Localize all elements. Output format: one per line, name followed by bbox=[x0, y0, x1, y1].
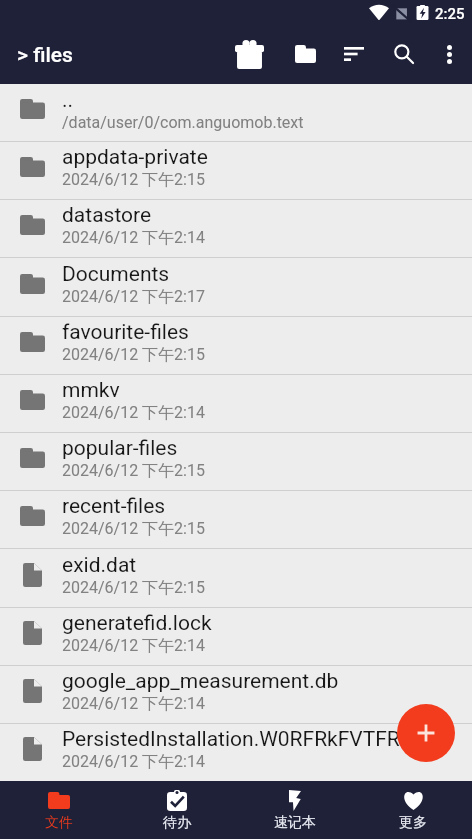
button[interactable]: Search bbox=[383, 28, 425, 84]
button[interactable]: 文件 bbox=[0, 781, 118, 839]
button[interactable]: google_app_measurement.db bbox=[0, 666, 472, 723]
button[interactable]: More options bbox=[428, 28, 470, 84]
staticText: Documents bbox=[62, 262, 170, 287]
staticText: 2:25 bbox=[435, 5, 465, 23]
button[interactable]: 待办 bbox=[118, 781, 236, 839]
staticText: recent-files bbox=[62, 494, 166, 519]
button[interactable]: recent-files bbox=[0, 491, 472, 548]
staticText: 2024/6/12 下午2:14 bbox=[62, 403, 205, 423]
staticText: 2024/6/12 下午2:15 bbox=[62, 578, 205, 598]
staticText: 待办 bbox=[163, 814, 191, 832]
staticText: 2024/6/12 下午2:14 bbox=[62, 636, 205, 656]
staticText: 2024/6/12 下午2:14 bbox=[62, 752, 205, 772]
button[interactable]: Folder bbox=[284, 28, 326, 84]
button[interactable]: datastore bbox=[0, 200, 472, 257]
staticText: > files bbox=[17, 43, 73, 68]
staticText: 2024/6/12 下午2:15 bbox=[62, 345, 205, 365]
staticText: mmkv bbox=[62, 378, 120, 403]
staticText: 2024/6/12 下午2:15 bbox=[62, 461, 205, 481]
button[interactable]: mmkv bbox=[0, 375, 472, 432]
staticText: 2024/6/12 下午2:14 bbox=[62, 228, 205, 248]
button[interactable]: 更多 bbox=[354, 781, 472, 839]
button[interactable]: exid.dat bbox=[0, 550, 472, 607]
button[interactable]: Documents bbox=[0, 259, 472, 316]
button[interactable]: popular-files bbox=[0, 433, 472, 490]
staticText: 速记本 bbox=[274, 814, 316, 832]
staticText: /data/user/0/com.anguomob.text bbox=[62, 113, 304, 132]
staticText: exid.dat bbox=[62, 553, 137, 578]
button[interactable]: appdata-private bbox=[0, 142, 472, 199]
button[interactable]: favourite-files bbox=[0, 317, 472, 374]
staticText: popular-files bbox=[62, 436, 178, 461]
staticText: PersistedInstallation.W0RFRkFVTFRd bbox=[62, 727, 412, 752]
staticText: google_app_measurement.db bbox=[62, 669, 339, 694]
staticText: 文件 bbox=[45, 814, 73, 832]
button[interactable]: generatefid.lock bbox=[0, 608, 472, 665]
staticText: .. bbox=[62, 88, 74, 113]
staticText: 2024/6/12 下午2:15 bbox=[62, 519, 205, 539]
staticText: 2024/6/12 下午2:17 bbox=[62, 287, 205, 307]
button[interactable]: PersistedInstallation.W0RFRkFVTFRd bbox=[0, 724, 472, 781]
staticText: 更多 bbox=[399, 814, 427, 832]
staticText: 2024/6/12 下午2:14 bbox=[62, 694, 205, 714]
button[interactable]: Add bbox=[397, 704, 455, 762]
staticText: datastore bbox=[62, 203, 152, 228]
button[interactable]: Sort bbox=[333, 28, 375, 84]
button[interactable]: 速记本 bbox=[236, 781, 354, 839]
staticText: generatefid.lock bbox=[62, 611, 212, 636]
button[interactable]: .. bbox=[0, 84, 472, 141]
staticText: 2024/6/12 下午2:15 bbox=[62, 170, 205, 190]
staticText: appdata-private bbox=[62, 145, 208, 170]
button[interactable]: Gift bbox=[228, 28, 270, 84]
staticText: favourite-files bbox=[62, 320, 189, 345]
